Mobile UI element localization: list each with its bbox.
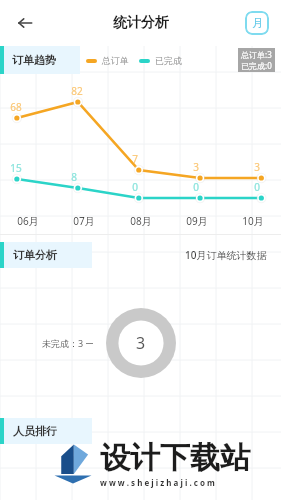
- staticText: 3: [136, 332, 146, 354]
- staticText: 0: [132, 180, 138, 194]
- staticText: 月: [252, 16, 263, 30]
- staticText: 已完成: [155, 55, 182, 66]
- staticText: 10月: [225, 214, 281, 228]
- staticText: 08月: [113, 214, 169, 228]
- staticText: 统计分析: [113, 14, 169, 32]
- button[interactable]: Back: [8, 6, 42, 40]
- staticText: 未完成：3: [42, 337, 84, 349]
- button[interactable]: 月: [245, 11, 269, 35]
- staticText: 已完成:0: [241, 60, 272, 71]
- staticText: 8: [71, 170, 77, 184]
- staticText: 07月: [56, 214, 112, 228]
- staticText: 0: [254, 180, 260, 194]
- staticText: 7: [132, 152, 138, 166]
- staticText: 10月订单统计数据: [185, 248, 267, 262]
- staticText: 3: [254, 160, 260, 174]
- staticText: 设计下载站: [100, 439, 250, 477]
- staticText: 订单趋势: [12, 53, 56, 67]
- staticText: 总订单: [102, 55, 129, 66]
- staticText: 82: [71, 84, 83, 98]
- staticText: 68: [10, 100, 22, 114]
- staticText: 0: [193, 180, 199, 194]
- staticText: 人员排行: [13, 424, 57, 438]
- staticText: 15: [10, 161, 22, 175]
- staticText: 06月: [0, 214, 56, 228]
- staticText: 3: [193, 160, 199, 174]
- staticText: 09月: [169, 214, 225, 228]
- staticText: 总订单:3: [241, 49, 272, 60]
- staticText: 订单分析: [13, 248, 57, 262]
- staticText: w w w . s h e j i z h a j i . c o m: [100, 477, 215, 488]
